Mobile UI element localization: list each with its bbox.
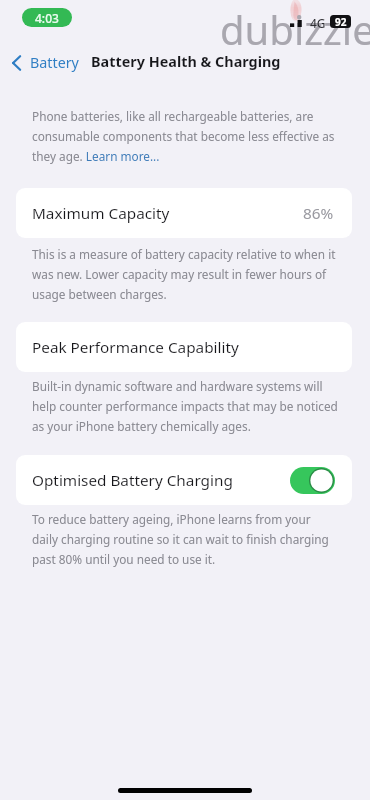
staticText: Battery (30, 53, 79, 72)
staticText: This is a measure of battery capacity re… (32, 246, 339, 302)
staticText: 4G (310, 15, 326, 31)
staticText: 92 (335, 15, 347, 28)
button[interactable]: Optimised Battery Charging (16, 455, 352, 505)
button[interactable]: Optimised Battery Charging toggle (290, 466, 335, 494)
staticText: Built-in dynamic software and hardware s… (32, 378, 339, 434)
staticText: Maximum Capacity (32, 203, 170, 224)
staticText: 4:03 (35, 10, 59, 26)
staticText: Battery Health & Charging (91, 52, 281, 72)
staticText: Phone batteries, like all rechargeable b… (32, 108, 339, 164)
staticText: dubizzle (220, 2, 370, 46)
button[interactable]: Peak Performance Capability (16, 322, 352, 372)
staticText: Optimised Battery Charging (32, 470, 233, 491)
staticText: 86% (303, 203, 334, 224)
staticText: To reduce battery ageing, iPhone learns … (32, 511, 339, 567)
button[interactable]: Maximum Capacity (16, 188, 352, 238)
other: Back (10, 54, 23, 72)
staticText: Peak Performance Capability (32, 337, 239, 358)
button[interactable]: Back (10, 53, 79, 72)
